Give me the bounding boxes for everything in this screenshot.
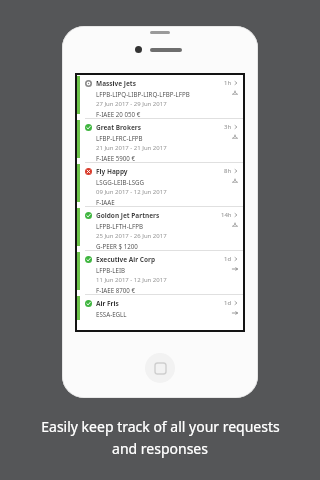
staticText: F-IAAE	[96, 198, 115, 206]
staticText: 27 Jun 2017 - 29 Jun 2017	[96, 100, 167, 108]
staticText: 09 Jun 2017 - 12 Jun 2017	[96, 188, 167, 196]
button[interactable]: Goldon Jet Partners	[77, 207, 243, 251]
staticText: 1d	[224, 299, 232, 307]
button[interactable]: Executive Air Corp	[77, 251, 243, 295]
staticText: Great Brokers	[96, 123, 142, 132]
other: Flight	[232, 90, 238, 96]
button[interactable]: Home	[145, 353, 175, 383]
staticText: 11 Jun 2017 - 12 Jun 2017	[96, 276, 167, 284]
staticText: 1d	[224, 255, 232, 263]
button[interactable]: Fly Happy	[77, 163, 243, 207]
staticText: LFPB-LEIB	[96, 266, 126, 274]
staticText: Massive Jets	[96, 79, 136, 88]
staticText: F-IAEE 8700 €	[96, 286, 136, 294]
button[interactable]: Massive Jets	[77, 75, 243, 119]
other: Flight	[232, 222, 238, 228]
staticText: 8h	[224, 167, 232, 175]
other: Forward	[232, 266, 238, 272]
staticText: Easily keep track of all your requests	[41, 417, 280, 436]
staticText: Fly Happy	[96, 167, 128, 176]
staticText: and responses	[112, 439, 208, 458]
staticText: LSGG-LEIB-LSGG	[96, 178, 145, 186]
staticText: LFPB-LFTH-LFPB	[96, 222, 143, 230]
staticText: G-PEER $ 1200	[96, 242, 138, 250]
button[interactable]: Great Brokers	[77, 119, 243, 163]
staticText: LFBP-LFRC-LFPB	[96, 134, 143, 142]
staticText: 21 Jun 2017 - 21 Jun 2017	[96, 144, 167, 152]
staticText: 3h	[224, 123, 232, 131]
staticText: F-IAEE 20 050 €	[96, 110, 141, 118]
staticText: F-IAEE 5900 €	[96, 154, 136, 162]
other: Flight	[232, 178, 238, 184]
other: Forward	[232, 310, 238, 316]
staticText: LFPB-LIPQ-LIBP-LIRQ-LFBP-LFPB	[96, 90, 190, 98]
staticText: Air Fris	[96, 299, 119, 308]
other: Flight	[232, 134, 238, 140]
staticText: 1h	[224, 79, 232, 87]
button[interactable]: Air Fris	[77, 295, 243, 321]
staticText: 25 Jun 2017 - 26 Jun 2017	[96, 232, 167, 240]
staticText: ESSA-EGLL	[96, 310, 127, 318]
staticText: 14h	[221, 211, 232, 219]
staticText: Executive Air Corp	[96, 255, 156, 264]
staticText: Goldon Jet Partners	[96, 211, 160, 220]
